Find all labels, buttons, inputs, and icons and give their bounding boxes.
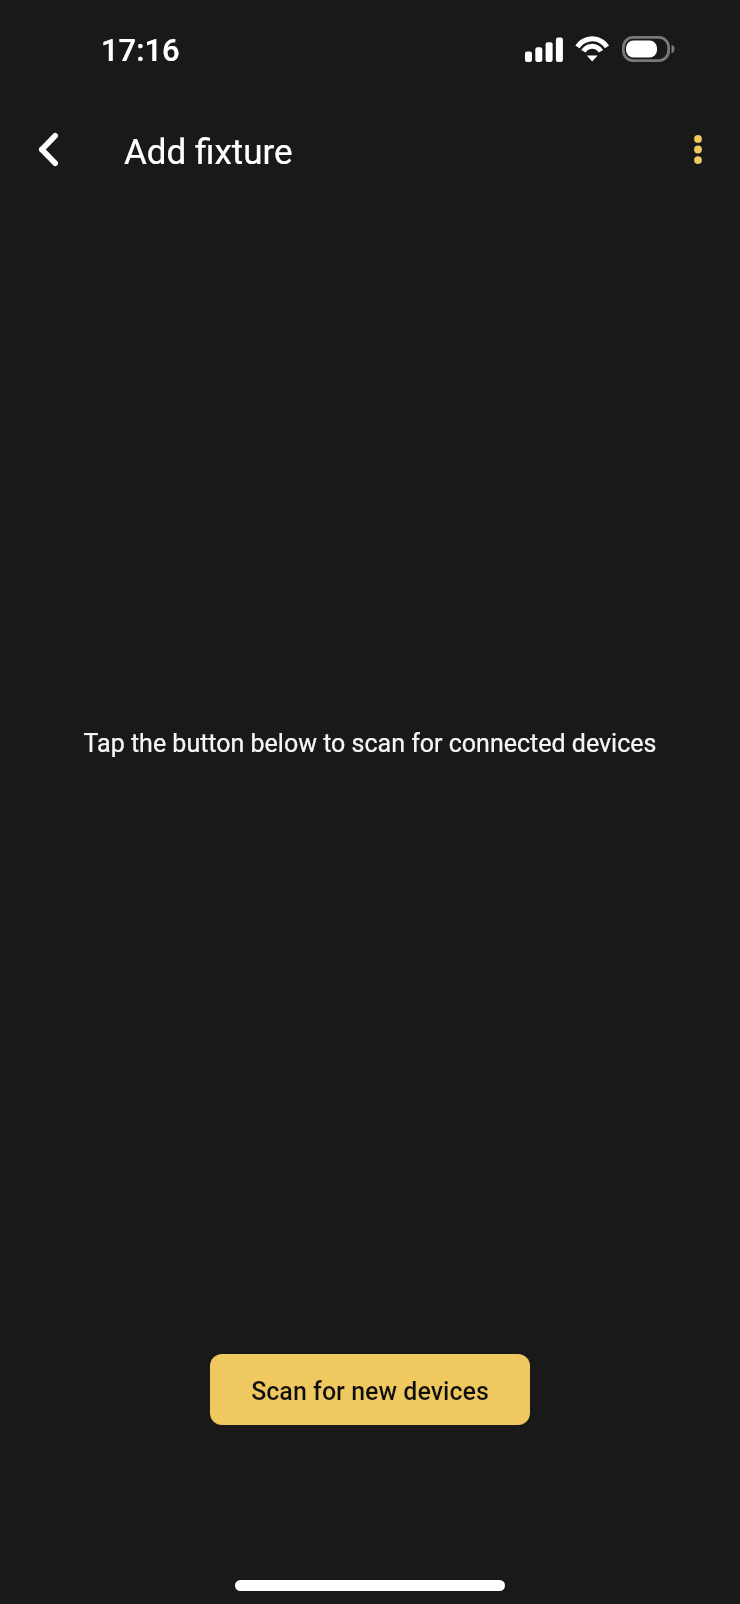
button[interactable]: Back <box>12 114 84 184</box>
button[interactable]: More options <box>664 115 732 183</box>
button[interactable]: Scan for new devices <box>210 1354 530 1425</box>
staticText: Scan for new devices <box>251 1377 489 1406</box>
staticText: Tap the button below to scan for connect… <box>0 729 740 758</box>
staticText: 17:16 <box>101 32 180 68</box>
staticText: Add fixture <box>124 132 293 173</box>
